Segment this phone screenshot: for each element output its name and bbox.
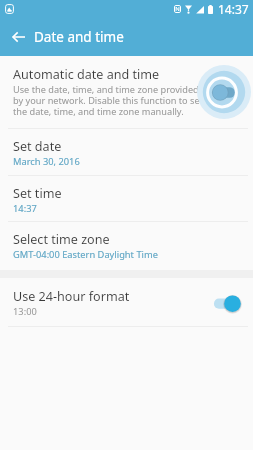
- button[interactable]: Set time: [0, 176, 253, 221]
- button[interactable]: Automatic date and time switch: [196, 64, 252, 120]
- staticText: 14:37: [13, 202, 37, 215]
- button[interactable]: Use 24-hour format switch: [210, 290, 244, 314]
- staticText: Select time zone: [13, 231, 110, 248]
- staticText: Set date: [13, 138, 62, 155]
- button[interactable]: Set date: [0, 129, 253, 175]
- staticText: 14:37: [218, 1, 249, 17]
- button[interactable]: Navigate up: [0, 19, 36, 55]
- staticText: GMT-04:00 Eastern Daylight Time: [13, 248, 158, 261]
- staticText: 13:00: [13, 305, 37, 318]
- staticText: Use the date, time, and time zone provid…: [13, 83, 209, 117]
- staticText: Use 24-hour format: [13, 288, 130, 305]
- staticText: Set time: [13, 185, 62, 202]
- button[interactable]: Automatic date and time: [0, 56, 253, 128]
- staticText: Date and time: [34, 28, 124, 46]
- button[interactable]: Select time zone: [0, 222, 253, 270]
- button[interactable]: Use 24-hour format: [0, 278, 253, 326]
- staticText: Automatic date and time: [13, 66, 160, 83]
- staticText: March 30, 2016: [13, 155, 80, 168]
